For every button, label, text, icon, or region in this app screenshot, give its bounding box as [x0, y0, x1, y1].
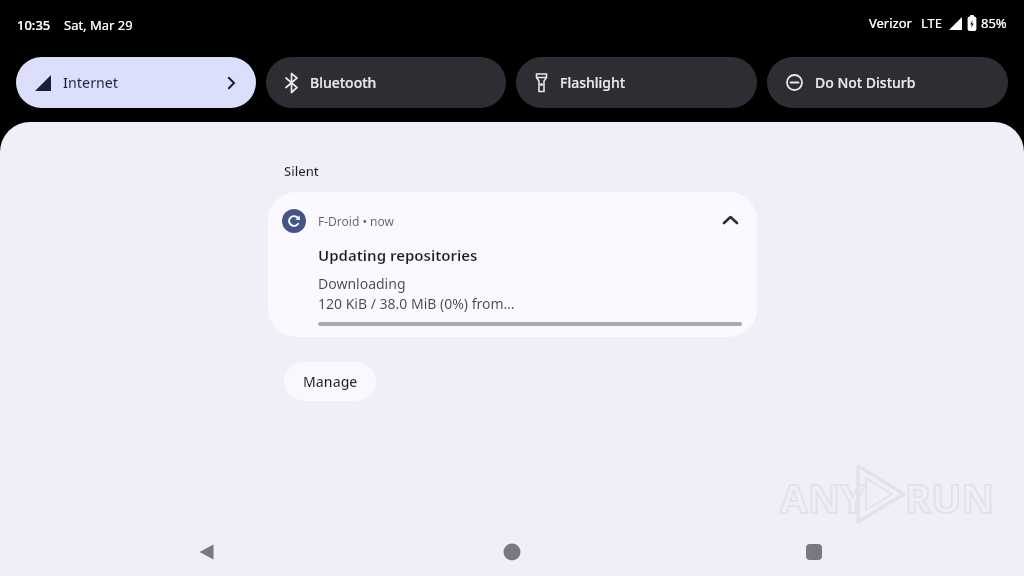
button[interactable]	[191, 536, 223, 568]
staticText: RUN	[905, 470, 994, 524]
button[interactable]	[714, 204, 746, 236]
button[interactable]: Internet	[16, 57, 256, 108]
button[interactable]	[496, 536, 528, 568]
button[interactable]: Bluetooth	[266, 57, 506, 108]
staticText: Silent	[284, 162, 319, 180]
staticText: 120 KiB / 38.0 MiB (0%) from…	[318, 294, 515, 313]
staticText: 85%	[981, 14, 1007, 32]
staticText: Bluetooth	[310, 73, 377, 92]
staticText: Verizor	[869, 14, 912, 32]
staticText: ANY	[780, 470, 866, 524]
staticText: 10:35	[17, 16, 51, 34]
button[interactable]: Flashlight	[516, 57, 757, 108]
staticText: Manage	[303, 372, 358, 391]
button[interactable]	[798, 536, 830, 568]
button[interactable]: Manage	[284, 362, 376, 401]
staticText: Sat, Mar 29	[64, 16, 133, 34]
button[interactable]: F-Droid • now	[268, 192, 757, 337]
staticText: Flashlight	[560, 73, 626, 92]
staticText: Internet	[63, 73, 119, 92]
staticText: Downloading	[318, 274, 406, 293]
staticText: F-Droid • now	[318, 213, 394, 229]
staticText: LTE	[921, 14, 943, 32]
staticText: Do Not Disturb	[815, 73, 916, 92]
button[interactable]: Do Not Disturb	[767, 57, 1008, 108]
staticText: Updating repositories	[318, 245, 478, 265]
